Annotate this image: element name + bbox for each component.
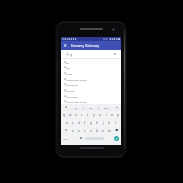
button[interactable]: d [76, 118, 82, 126]
button[interactable]: Search [114, 136, 119, 141]
button[interactable]: Clear query [112, 51, 118, 57]
button[interactable]: ?123 [61, 134, 69, 142]
staticText: quantifiers [67, 96, 79, 99]
staticText: e [75, 113, 77, 117]
staticText: l [115, 121, 116, 125]
button[interactable]: j [100, 118, 106, 126]
staticText: b [96, 129, 98, 133]
staticText: j [103, 121, 104, 125]
staticText: x [78, 129, 80, 133]
button[interactable]: Open navigation drawer [62, 42, 68, 49]
staticText: m [108, 129, 111, 133]
staticText: i [106, 113, 107, 117]
button[interactable]: p [115, 110, 121, 118]
button[interactable]: y [91, 110, 97, 118]
staticText: quo [104, 106, 109, 109]
staticText: q [70, 53, 72, 57]
button[interactable]: o [109, 110, 115, 118]
button[interactable]: g [88, 118, 94, 126]
staticText: f [84, 121, 86, 125]
staticText: quantitative easing [67, 101, 87, 104]
button[interactable]: quarter [61, 87, 121, 93]
button[interactable]: quantifiers [61, 93, 121, 99]
staticText: n [102, 129, 104, 133]
button[interactable]: Shift [61, 126, 70, 134]
button[interactable]: quotations [61, 82, 121, 87]
staticText: qi [67, 62, 69, 65]
button[interactable]: r [79, 110, 85, 118]
staticText: z [72, 129, 74, 133]
staticText: quantitative easing [67, 79, 87, 82]
button[interactable]: quantitative easing [61, 99, 121, 104]
staticText: p [117, 113, 119, 117]
button[interactable]: f [82, 118, 88, 126]
button[interactable]: z [70, 126, 76, 134]
button[interactable]: m [106, 126, 112, 134]
staticText: qis [67, 67, 70, 70]
button[interactable]: Emoji [78, 134, 84, 142]
staticText: quad [67, 73, 73, 76]
button[interactable]: q [61, 50, 121, 58]
staticText: u [99, 113, 101, 117]
staticText: d [78, 121, 80, 125]
button[interactable]: quantitative easing [61, 76, 121, 82]
staticText: qat [89, 106, 93, 109]
button[interactable]: a [64, 118, 70, 126]
staticText: y [93, 113, 95, 117]
staticText: q [63, 113, 65, 117]
button[interactable]: Google search [63, 104, 69, 110]
staticText: quotations [67, 84, 79, 87]
staticText: , [73, 137, 74, 141]
button[interactable]: i [103, 110, 109, 118]
button[interactable]: qat [84, 104, 98, 110]
button[interactable]: v [88, 126, 94, 134]
staticText: a [66, 121, 68, 125]
staticText: qi [75, 106, 78, 109]
button[interactable]: c [82, 126, 88, 134]
button[interactable]: q [61, 110, 67, 118]
button[interactable]: w [67, 110, 73, 118]
button[interactable]: n [100, 126, 106, 134]
staticText: quarter [67, 90, 75, 93]
staticText: w [69, 113, 72, 117]
button[interactable]: b [94, 126, 100, 134]
button[interactable]: qis [61, 65, 121, 70]
button[interactable]: , [69, 134, 78, 142]
staticText: o [111, 113, 113, 117]
button[interactable]: e [73, 110, 79, 118]
button[interactable]: quo [99, 104, 113, 110]
button[interactable]: h [94, 118, 100, 126]
button[interactable]: Backspace [112, 126, 121, 134]
button[interactable]: x [76, 126, 82, 134]
staticText: v [90, 129, 92, 133]
button[interactable]: u [97, 110, 103, 118]
staticText: t [87, 113, 89, 117]
button[interactable]: k [106, 118, 112, 126]
button[interactable]: s [70, 118, 76, 126]
staticText: . [108, 137, 109, 141]
button[interactable]: t [85, 110, 91, 118]
button[interactable]: l [112, 118, 118, 126]
staticText: s [72, 121, 74, 125]
staticText: g [90, 121, 92, 125]
staticText: c [84, 129, 86, 133]
staticText: Economy Dictionary [71, 44, 100, 48]
staticText: r [81, 113, 83, 117]
button[interactable]: More suggestions [114, 104, 120, 110]
staticText: ?123 [63, 138, 68, 141]
staticText: k [108, 121, 110, 125]
staticText: h [96, 121, 98, 125]
button[interactable]: qi [69, 104, 83, 110]
button[interactable]: quad [61, 70, 121, 76]
button[interactable]: qi [61, 59, 121, 65]
